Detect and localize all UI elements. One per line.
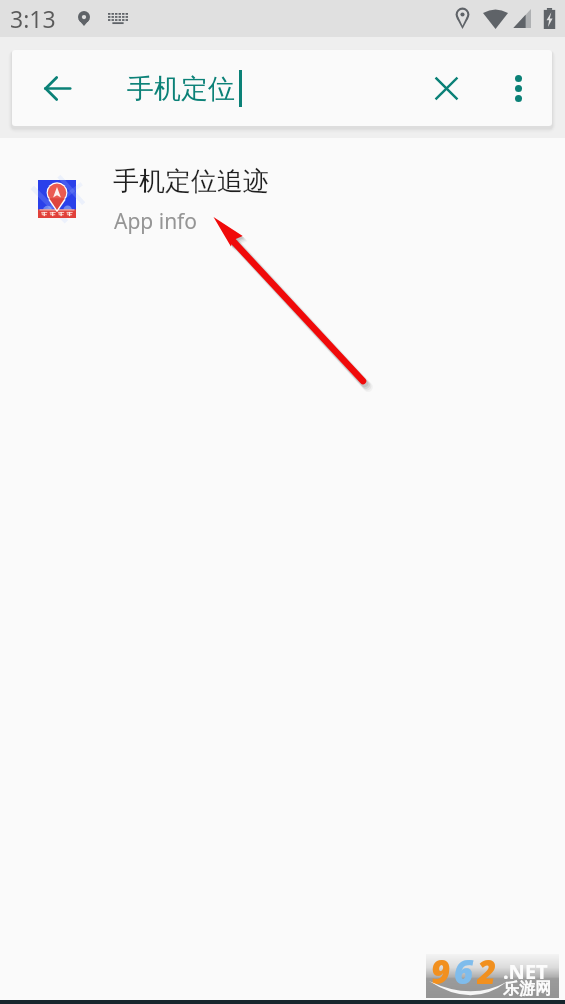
button[interactable]: Clear search	[411, 50, 481, 126]
button[interactable]: More options	[489, 50, 547, 126]
button[interactable]: Back	[21, 50, 93, 126]
staticText: 手机定位追迹	[113, 165, 269, 198]
staticText: 乐游网	[503, 979, 551, 998]
staticText: 2	[477, 954, 500, 993]
staticText: 手机定位	[127, 72, 235, 106]
staticText: 9	[431, 954, 454, 993]
staticText: App info	[114, 207, 198, 236]
staticText: 3:13	[10, 3, 56, 34]
button[interactable]: 手机定位追迹	[0, 138, 565, 250]
staticText: .NET	[503, 958, 548, 985]
staticText: 6	[454, 954, 477, 993]
button[interactable]: 手机定位	[105, 50, 411, 126]
